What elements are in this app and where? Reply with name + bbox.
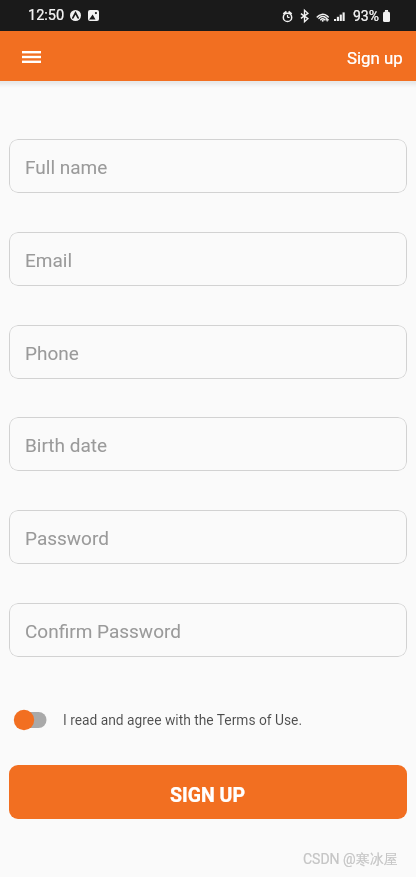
- staticText: Phone: [25, 342, 79, 364]
- staticText: Password: [25, 527, 109, 549]
- button[interactable]: Birth date: [9, 417, 407, 471]
- staticText: Sign up: [347, 48, 403, 68]
- staticText: CSDN @寒冰屋: [303, 851, 398, 869]
- staticText: I read and agree with the Terms of Use.: [63, 712, 303, 728]
- button[interactable]: SIGN UP: [9, 765, 407, 819]
- staticText: Confirm Password: [25, 620, 181, 642]
- button[interactable]: Full name: [9, 139, 407, 193]
- staticText: 12:50: [28, 7, 65, 24]
- button[interactable]: I read and agree with the Terms of Use.: [58, 705, 303, 735]
- button[interactable]: Confirm Password: [9, 603, 407, 657]
- button[interactable]: Sign up: [334, 31, 416, 81]
- button[interactable]: Phone: [9, 325, 407, 379]
- staticText: 93%: [353, 8, 379, 24]
- button[interactable]: Password: [9, 510, 407, 564]
- staticText: Birth date: [25, 434, 108, 456]
- button[interactable]: Email: [9, 232, 407, 286]
- staticText: SIGN UP: [170, 784, 246, 807]
- button[interactable]: Toggle: I read and agree with the Terms …: [0, 705, 58, 735]
- staticText: Full name: [25, 156, 108, 178]
- staticText: Email: [25, 249, 73, 271]
- button[interactable]: Open navigation menu: [12, 37, 51, 76]
